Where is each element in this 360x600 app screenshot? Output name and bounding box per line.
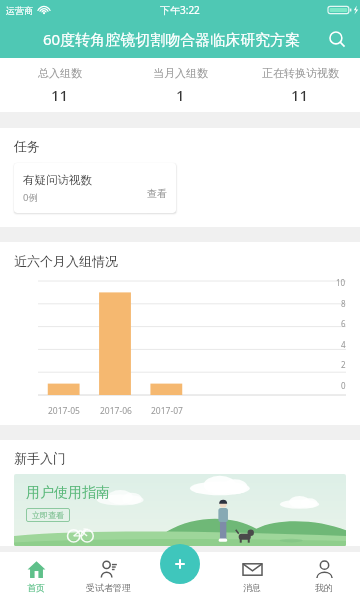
button[interactable]: 首页 [0,552,72,600]
staticText: 0 [341,380,346,391]
button[interactable]: 搜索 [322,24,352,54]
staticText: 11 [51,85,69,105]
staticText: 10 [336,277,346,288]
button[interactable]: 我的 [288,552,360,600]
staticText: 新手入门 [14,450,66,466]
button[interactable]: 消息 [216,552,288,600]
staticText: 6 [341,318,346,329]
staticText: 0例 [23,191,38,204]
staticText: 受试者管理 [86,582,131,593]
button[interactable]: 正在转换访视数 [240,66,360,105]
staticText: 2017-05 [48,405,80,417]
staticText: 首页 [27,582,45,593]
staticText: 8 [341,298,346,309]
staticText: 2017-07 [151,405,183,417]
staticText: 用户使用指南 [26,484,110,502]
staticText: 近六个月入组情况 [14,253,118,269]
staticText: 11 [291,85,309,105]
button[interactable]: 有疑问访视数 [14,163,176,213]
staticText: 消息 [243,582,261,593]
staticText: 2017-06 [100,405,132,417]
staticText: 我的 [315,582,333,593]
staticText: 60度转角腔镜切割吻合器临床研究方案 [43,29,301,49]
staticText: 有疑问访视数 [23,173,92,187]
staticText: 总入组数 [38,66,82,80]
staticText: 立即查看 [32,510,64,520]
staticText: 运营商 [6,5,33,16]
button[interactable]: 新增 [160,544,200,584]
button[interactable]: 受试者管理 [72,552,144,600]
staticText: 4 [341,339,346,350]
staticText: 1 [176,85,185,105]
staticText: 查看 [147,187,167,200]
button[interactable]: 总入组数 [0,66,120,105]
button[interactable]: 当月入组数 [120,66,240,105]
staticText: 任务 [14,138,40,154]
staticText: 当月入组数 [153,66,208,80]
button[interactable]: 用户使用指南 [14,474,346,546]
staticText: 2 [341,359,346,370]
staticText: 正在转换访视数 [262,66,339,80]
staticText: 下午3:22 [160,3,200,17]
